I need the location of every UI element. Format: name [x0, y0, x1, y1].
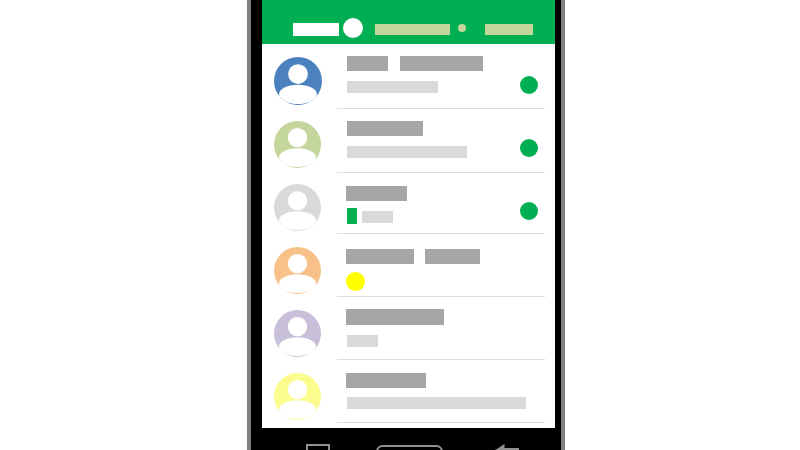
button[interactable]: Conversation 1 [262, 44, 555, 107]
button[interactable]: Conversation 6 [262, 359, 555, 422]
button[interactable]: More options [458, 24, 466, 32]
button[interactable]: Conversation 2 [262, 108, 555, 172]
button[interactable]: Account [343, 18, 363, 38]
button[interactable]: Back [494, 443, 519, 450]
button[interactable]: Recent apps [307, 445, 329, 450]
button[interactable]: Home [377, 446, 442, 450]
button[interactable]: Conversation 3 [262, 172, 555, 233]
button[interactable]: Conversation 5 [262, 296, 555, 359]
button[interactable]: Conversation 4 [262, 233, 555, 296]
